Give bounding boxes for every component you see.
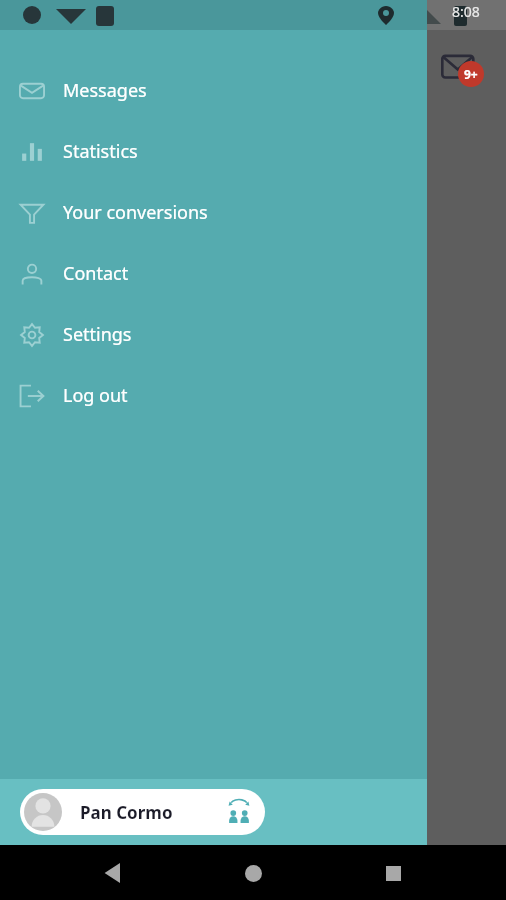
staticText: Your conversions	[63, 200, 208, 225]
staticText: Contact	[63, 261, 129, 286]
button[interactable]: Messages	[0, 60, 427, 121]
staticText: 9+	[464, 66, 478, 82]
button[interactable]: Your conversions	[0, 182, 427, 243]
staticText: Settings	[63, 322, 132, 347]
button[interactable]: Pan Cormo	[20, 789, 265, 835]
staticText: Pan Cormo	[80, 801, 173, 824]
staticText: Log out	[63, 383, 128, 408]
button[interactable]: Contact	[0, 243, 427, 304]
button[interactable]: Home	[226, 846, 280, 900]
staticText: Statistics	[63, 139, 138, 164]
button[interactable]: Switch account	[219, 792, 259, 832]
staticText: 8:08	[452, 2, 480, 21]
button[interactable]: Back	[86, 846, 140, 900]
button[interactable]: Statistics	[0, 121, 427, 182]
button[interactable]: Log out	[0, 365, 427, 426]
button[interactable]: Messages with 9 plus unread	[441, 44, 489, 92]
staticText: Messages	[63, 78, 147, 103]
button[interactable]: Recent apps	[366, 846, 420, 900]
button[interactable]: Settings	[0, 304, 427, 365]
